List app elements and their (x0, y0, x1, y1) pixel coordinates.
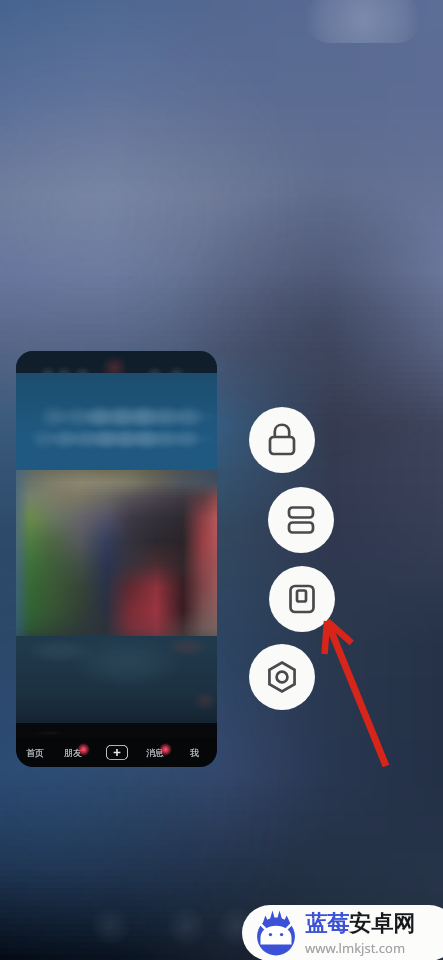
staticText: 我 (190, 747, 199, 758)
button[interactable]: Split screen (268, 487, 334, 553)
staticText: www.lmkjst.com (305, 939, 406, 957)
button[interactable]: 消息 (145, 740, 171, 765)
staticText: 安卓网 (349, 910, 415, 938)
button[interactable]: Picture in picture (269, 566, 335, 632)
staticText: 蓝莓 (305, 910, 349, 938)
button[interactable]: 朋友 (63, 740, 89, 765)
button[interactable]: Lock app (249, 407, 315, 473)
button[interactable]: 我 (189, 740, 205, 765)
button[interactable]: 蓝莓 (242, 905, 443, 960)
button[interactable]: 首页 (25, 740, 51, 765)
staticText: 消息 (146, 747, 164, 758)
button[interactable]: Create (106, 745, 128, 760)
button[interactable]: App settings (249, 644, 315, 710)
staticText: 朋友 (64, 747, 82, 758)
staticText: 首页 (26, 747, 44, 758)
button[interactable]: 首页 (16, 351, 217, 767)
